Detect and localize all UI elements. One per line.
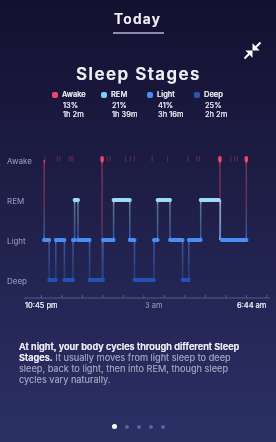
staticText: 21% <box>112 101 127 110</box>
staticText: At night, your body cycles through diffe… <box>19 341 252 385</box>
button[interactable]: Page 3 <box>137 425 141 429</box>
staticText: 25% <box>205 101 222 110</box>
button[interactable]: Collapse <box>244 42 261 59</box>
staticText: 3 am <box>145 301 163 310</box>
staticText: Today <box>114 11 162 28</box>
button[interactable]: Page 2 <box>125 425 129 429</box>
staticText: Deep <box>204 90 223 99</box>
staticText: REM <box>111 90 128 99</box>
staticText: 6:44 am <box>237 301 267 310</box>
staticText: 2h 2m <box>205 110 228 119</box>
button[interactable]: Today <box>114 11 162 28</box>
staticText: 1h 39m <box>112 110 138 119</box>
staticText: 3h 16m <box>158 110 184 119</box>
staticText: 41% <box>158 101 174 110</box>
staticText: Light <box>7 236 26 246</box>
staticText: 1h 2m <box>63 110 84 119</box>
staticText: Light <box>157 90 175 99</box>
staticText: Awake <box>62 90 86 99</box>
button[interactable]: Page 1 <box>112 424 117 429</box>
staticText: 10:45 pm <box>25 301 58 310</box>
staticText: Deep <box>7 276 27 286</box>
button[interactable]: Page 5 <box>161 425 165 429</box>
button[interactable]: Page 4 <box>149 425 153 429</box>
staticText: REM <box>7 196 25 206</box>
staticText: Awake <box>7 156 32 166</box>
staticText: 13% <box>63 101 79 110</box>
staticText: Sleep Stages <box>76 64 201 85</box>
